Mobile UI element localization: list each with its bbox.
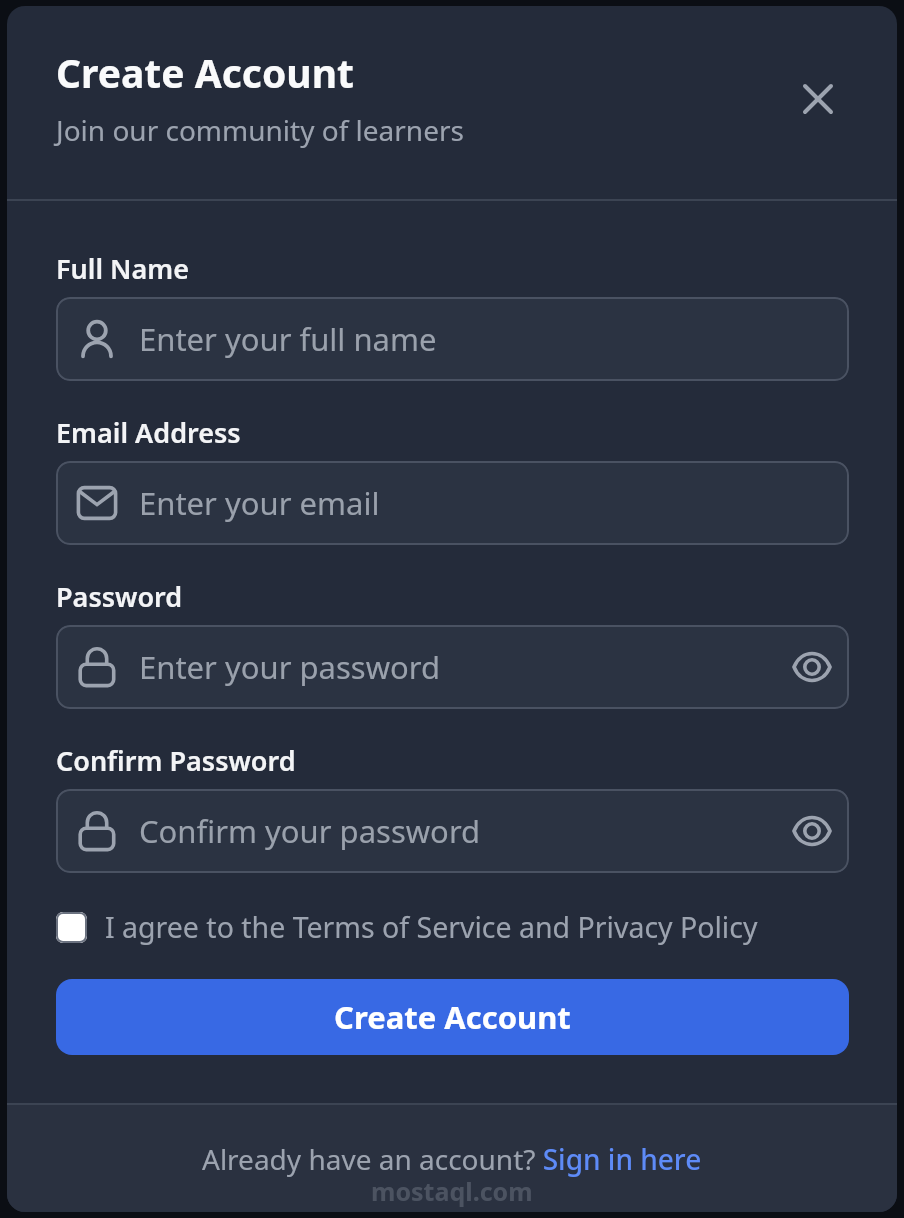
staticText: Create Account bbox=[56, 46, 354, 99]
staticText: Join our community of learners bbox=[56, 111, 464, 149]
button[interactable]: Create Account bbox=[56, 979, 849, 1055]
button[interactable]: Enter your full name bbox=[56, 297, 849, 381]
staticText: Confirm Password bbox=[56, 742, 296, 779]
button[interactable]: Confirm your password bbox=[56, 789, 849, 873]
button[interactable] bbox=[798, 79, 838, 119]
staticText: Create Account bbox=[334, 996, 571, 1038]
button[interactable]: Enter your email bbox=[56, 461, 849, 545]
staticText: Password bbox=[56, 578, 183, 615]
staticText: I agree to the Terms of Service and Priv… bbox=[105, 908, 758, 947]
staticText: Enter your password bbox=[139, 646, 794, 688]
button[interactable]: Enter your password bbox=[56, 625, 849, 709]
staticText: Full Name bbox=[56, 250, 189, 287]
staticText: Enter your email bbox=[139, 482, 849, 524]
staticText: Confirm your password bbox=[139, 810, 794, 852]
staticText: mostaql.com bbox=[371, 1174, 533, 1208]
staticText: Email Address bbox=[56, 414, 241, 451]
button[interactable]: Already have an account? Sign in here bbox=[202, 1140, 702, 1178]
staticText: Enter your full name bbox=[139, 318, 849, 360]
button[interactable]: I agree to the Terms of Service and Priv… bbox=[56, 908, 758, 947]
